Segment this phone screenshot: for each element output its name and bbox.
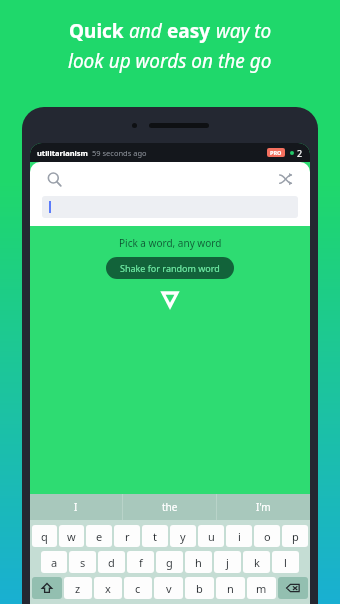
staticText: the	[162, 500, 178, 514]
staticText: u	[208, 529, 215, 544]
button[interactable]: a	[41, 551, 67, 573]
staticText: s	[80, 555, 86, 570]
button[interactable]: l	[272, 551, 299, 573]
staticText: b	[196, 581, 203, 596]
staticText: I	[74, 500, 78, 514]
staticText: n	[227, 581, 234, 596]
staticText: and	[124, 18, 167, 44]
staticText: i	[238, 529, 241, 544]
button[interactable]: c	[124, 577, 152, 599]
staticText: Shake for random word	[120, 262, 220, 274]
staticText: 2	[297, 147, 303, 159]
button[interactable]: q	[32, 525, 57, 547]
button[interactable]: t	[142, 525, 168, 547]
staticText: x	[105, 581, 111, 596]
button[interactable]: s	[69, 551, 96, 573]
staticText: e	[96, 529, 103, 544]
staticText: o	[264, 529, 271, 544]
button[interactable]: n	[216, 577, 245, 599]
staticText: r	[125, 529, 130, 544]
button[interactable]: f	[127, 551, 154, 573]
button[interactable]: v	[154, 577, 183, 599]
staticText: l	[284, 555, 287, 570]
button[interactable]: I	[30, 494, 122, 520]
button[interactable]: j	[214, 551, 241, 573]
button[interactable]: Backspace	[278, 577, 308, 599]
staticText: f	[139, 555, 143, 570]
staticText: utilitarianism	[37, 148, 88, 158]
staticText: d	[108, 555, 115, 570]
button[interactable]: d	[98, 551, 125, 573]
staticText: g	[166, 555, 173, 570]
staticText: j	[226, 555, 229, 570]
staticText: h	[195, 555, 202, 570]
button[interactable]: p	[282, 525, 308, 547]
staticText: c	[135, 581, 141, 596]
button[interactable]: u	[198, 525, 224, 547]
button[interactable]	[42, 196, 298, 218]
staticText: way to	[211, 18, 272, 44]
button[interactable]: w	[59, 525, 84, 547]
button[interactable]: the	[123, 494, 216, 520]
staticText: v	[166, 581, 172, 596]
staticText: a	[51, 555, 58, 570]
button[interactable]: i	[226, 525, 252, 547]
staticText: y	[180, 529, 186, 544]
staticText: q	[41, 529, 48, 544]
staticText: easy	[167, 18, 211, 44]
staticText: Quick	[69, 18, 124, 44]
staticText: m	[256, 581, 267, 596]
staticText: w	[67, 529, 76, 544]
button[interactable]: y	[170, 525, 196, 547]
button[interactable]: k	[243, 551, 270, 573]
staticText: t	[153, 529, 157, 544]
button[interactable]: h	[185, 551, 212, 573]
staticText: p	[292, 529, 299, 544]
staticText: z	[75, 581, 81, 596]
button[interactable]: Search	[42, 167, 66, 191]
button[interactable]: x	[94, 577, 122, 599]
button[interactable]: g	[156, 551, 183, 573]
button[interactable]: e	[86, 525, 112, 547]
button[interactable]: b	[185, 577, 214, 599]
button[interactable]: o	[254, 525, 280, 547]
button[interactable]: PRO	[267, 148, 285, 157]
button[interactable]: Shake for random word	[106, 257, 234, 279]
staticText: PRO	[270, 149, 282, 156]
button[interactable]: Shuffle	[274, 167, 298, 191]
staticText: Pick a word, any word	[119, 236, 222, 250]
staticText: 59 seconds ago	[92, 148, 147, 158]
staticText: I'm	[256, 500, 271, 514]
button[interactable]: m	[247, 577, 276, 599]
staticText: k	[254, 555, 260, 570]
button[interactable]: Shift	[32, 577, 62, 599]
button[interactable]: I'm	[217, 494, 310, 520]
staticText: look up words on the go	[68, 48, 272, 74]
button[interactable]: r	[114, 525, 140, 547]
button[interactable]: z	[64, 577, 92, 599]
